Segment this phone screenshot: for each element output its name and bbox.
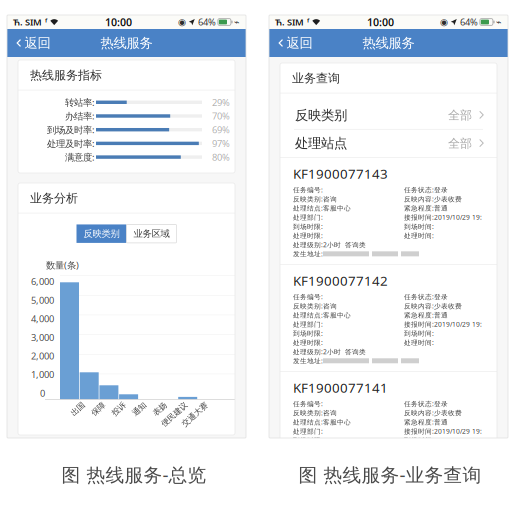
staticText: 80% — [212, 151, 230, 163]
staticText: 到场时限: — [293, 329, 323, 338]
staticText: 任务编号: — [293, 185, 323, 194]
staticText: KF1900077141 — [293, 379, 388, 396]
staticText: KF1900077142 — [293, 272, 388, 289]
staticText: 反映内容:少表收费 — [404, 301, 462, 310]
staticText: 业务分析 — [30, 191, 78, 206]
staticText: 返回 — [24, 35, 50, 51]
staticText: KF1900077143 — [293, 165, 388, 182]
staticText: 处理时限: — [293, 338, 323, 347]
button[interactable]: 处理站点 — [280, 130, 497, 157]
staticText: 到场时限: — [293, 436, 323, 445]
staticText: 满意度: — [65, 151, 95, 163]
staticText: ⌁ — [234, 17, 240, 27]
button[interactable]: 业务区域 — [126, 224, 176, 243]
staticText: 任务状态:登录 — [404, 185, 448, 194]
staticText: 处理结点:客服中心 — [293, 311, 351, 319]
staticText: 数量(条) — [46, 259, 79, 271]
staticText: 处理时间: — [404, 231, 434, 240]
staticText: 64% — [460, 16, 478, 28]
staticText: 3,000 — [31, 331, 54, 343]
staticText: 发生地址: — [293, 356, 323, 365]
staticText: 5,000 — [31, 294, 54, 306]
staticText: 反映类别:咨询 — [293, 408, 337, 417]
staticText: 到场时间: — [404, 436, 434, 445]
staticText: 全部 — [448, 136, 472, 151]
staticText: 便民建议 — [151, 400, 183, 410]
staticText: 处理部门: — [293, 213, 323, 222]
staticText: 反映内容:少表收费 — [404, 408, 462, 417]
staticText: ◉ — [440, 17, 448, 27]
staticText: 处理时限: — [293, 231, 323, 240]
staticText: 处理部门: — [293, 320, 323, 329]
staticText: Ћ. SIM — [275, 16, 304, 28]
staticText: 接报时间:2019/10/29 19: — [404, 320, 482, 329]
staticText: 返回 — [286, 35, 312, 51]
staticText: 到场时限: — [293, 222, 323, 231]
staticText: 热线服务指标 — [30, 68, 102, 83]
staticText: 投诉 — [105, 400, 121, 410]
staticText: 保障 — [85, 400, 101, 410]
staticText: 紧急程度:普通 — [404, 204, 448, 213]
staticText: 图 热线服务-总览 — [61, 462, 206, 487]
staticText: 转站率: — [65, 96, 95, 108]
staticText: 处理结点:客服中心 — [293, 204, 351, 213]
staticText: 处理部门: — [293, 427, 323, 436]
staticText: 0 — [40, 387, 45, 399]
staticText: 2,000 — [31, 350, 54, 362]
staticText: 任务状态:登录 — [404, 292, 448, 301]
staticText: 业务查询 — [292, 71, 340, 86]
staticText: ◉ — [178, 17, 186, 27]
button[interactable]: 反映类别 — [280, 101, 497, 129]
staticText: 任务编号: — [293, 399, 323, 408]
button[interactable]: 返回 — [269, 29, 320, 57]
staticText: 处理级别:2小时 答询类 — [293, 347, 366, 356]
staticText: 通知 — [126, 400, 142, 410]
staticText: 反映内容:少表收费 — [404, 194, 462, 203]
staticText: 接报时间:2019/10/29 19: — [404, 213, 482, 222]
staticText: 紧急程度:普通 — [404, 311, 448, 319]
staticText: ᶠ — [307, 16, 309, 28]
staticText: 4,000 — [31, 312, 54, 325]
staticText: 反映类别 — [295, 107, 347, 123]
staticText: 69% — [212, 123, 230, 136]
staticText: 70% — [212, 110, 230, 122]
button[interactable]: 反映类别 — [76, 224, 126, 243]
staticText: 处理级别:2小时 答询类 — [293, 240, 366, 249]
staticText: 处理结点:客服中心 — [293, 418, 351, 426]
staticText: 29% — [212, 96, 230, 108]
staticText: 64% — [198, 16, 216, 28]
staticText: 全部 — [448, 108, 472, 122]
button[interactable]: 返回 — [7, 29, 58, 57]
staticText: 10:00 — [367, 15, 394, 29]
staticText: 热线服务 — [100, 35, 152, 51]
staticText: 到场及时率: — [47, 123, 95, 136]
staticText: 反映类别 — [83, 228, 119, 239]
staticText: 接报时间:2019/10/29 19: — [404, 427, 482, 436]
staticText: 到场时间: — [404, 222, 434, 231]
staticText: 任务状态:登录 — [404, 399, 448, 408]
staticText: 97% — [212, 137, 230, 150]
staticText: 图 热线服务-业务查询 — [298, 462, 481, 487]
staticText: ᶠ — [45, 16, 47, 28]
staticText: 到场时间: — [404, 329, 434, 338]
staticText: 处理站点 — [295, 135, 347, 152]
staticText: 处理时间: — [404, 338, 434, 347]
staticText: 发生地址: — [293, 249, 323, 258]
staticText: 表扬 — [146, 400, 162, 410]
staticText: 反映类别:咨询 — [293, 301, 337, 310]
staticText: 发生地址: — [293, 463, 323, 472]
staticText: 1,000 — [31, 368, 54, 381]
staticText: 交通大赛 — [171, 400, 203, 410]
staticText: 6,000 — [31, 275, 54, 288]
staticText: 业务区域 — [133, 228, 169, 239]
staticText: 办结率: — [65, 110, 95, 122]
staticText: 任务编号: — [293, 292, 323, 301]
staticText: 紧急程度:普通 — [404, 418, 448, 426]
staticText: 热线服务 — [362, 35, 414, 51]
staticText: 处理及时率: — [47, 137, 95, 150]
staticText: ⌁ — [496, 17, 502, 27]
staticText: 出国 — [64, 400, 80, 410]
